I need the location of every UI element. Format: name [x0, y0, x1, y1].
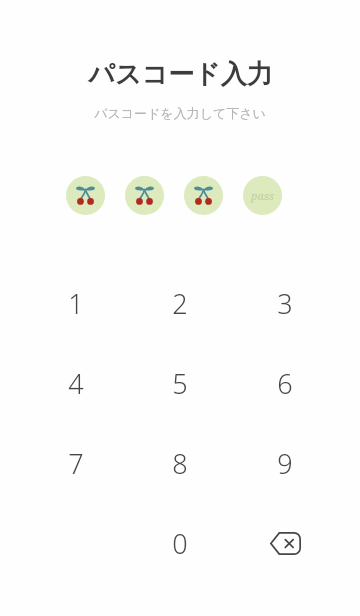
staticText: 3: [277, 285, 293, 322]
staticText: パスコードを入力して下さい: [94, 105, 266, 121]
staticText: 0: [172, 525, 188, 562]
button[interactable]: 0: [132, 507, 228, 579]
button[interactable]: 2: [132, 267, 228, 339]
staticText: pass: [251, 188, 274, 203]
button[interactable]: 6: [237, 347, 333, 419]
button[interactable]: 7: [28, 427, 124, 499]
button[interactable]: Delete: [237, 507, 333, 579]
button[interactable]: 8: [132, 427, 228, 499]
button[interactable]: 5: [132, 347, 228, 419]
staticText: 8: [172, 445, 188, 482]
staticText: 2: [172, 285, 188, 322]
staticText: 1: [68, 285, 84, 322]
staticText: 7: [68, 445, 84, 482]
button[interactable]: 3: [237, 267, 333, 339]
staticText: 9: [277, 445, 293, 482]
staticText: 4: [68, 365, 84, 402]
button[interactable]: 1: [28, 267, 124, 339]
button[interactable]: 9: [237, 427, 333, 499]
staticText: 5: [172, 365, 188, 402]
staticText: パスコード入力: [88, 58, 273, 91]
staticText: 6: [277, 365, 293, 402]
button[interactable]: 4: [28, 347, 124, 419]
